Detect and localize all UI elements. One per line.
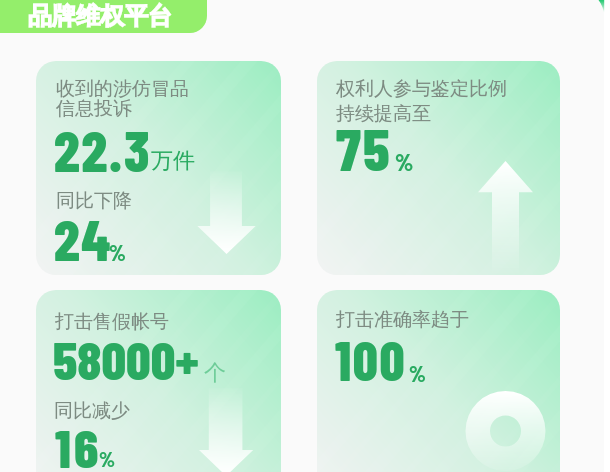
staticText: % (99, 446, 115, 471)
button[interactable]: 打击准确率趋于 (317, 290, 560, 472)
staticText: 个 (204, 359, 226, 387)
staticText: 100 (335, 326, 407, 392)
staticText: 同比减少 (54, 399, 130, 423)
staticText: 22.3 (54, 115, 152, 183)
button[interactable]: 权利人参与鉴定比例 (317, 61, 560, 275)
staticText: 75 (336, 112, 392, 183)
staticText: 权利人参与鉴定比例 (336, 77, 507, 101)
staticText: 收到的涉仿冒品 (56, 77, 189, 101)
staticText: % (409, 360, 426, 386)
staticText: 品牌维权平台 (28, 1, 172, 31)
staticText: 打击准确率趋于 (336, 308, 469, 332)
staticText: 信息投诉 (56, 97, 132, 121)
staticText: % (395, 147, 414, 176)
staticText: 持续提高至 (336, 102, 431, 126)
staticText: % (109, 239, 126, 265)
button[interactable]: 收到的涉仿冒品 (36, 61, 281, 275)
staticText: 万件 (151, 147, 195, 175)
button[interactable]: 品牌维权平台 (0, 0, 207, 33)
staticText: 同比下降 (56, 189, 132, 213)
staticText: 16 (55, 414, 102, 472)
staticText: 58000+ (53, 326, 199, 391)
staticText: 24 (54, 204, 112, 272)
button[interactable]: 打击售假帐号 (36, 290, 281, 472)
staticText: 打击售假帐号 (55, 310, 169, 334)
